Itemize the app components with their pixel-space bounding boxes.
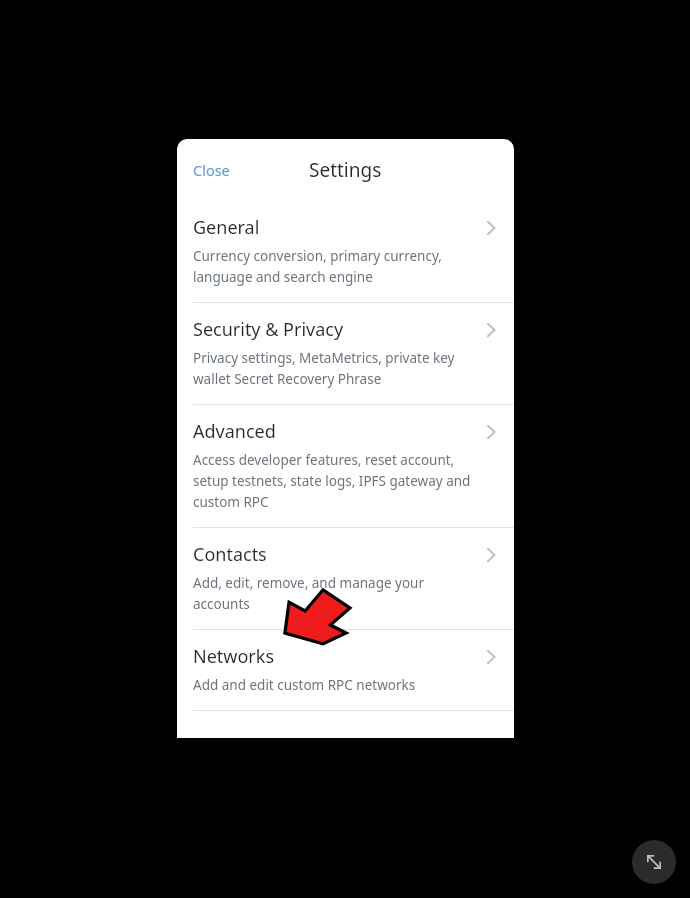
button[interactable]: Expand <box>632 840 676 884</box>
staticText: Add, edit, remove, and manage your <box>193 574 425 592</box>
staticText: Contacts <box>193 542 267 567</box>
staticText: Advanced <box>193 419 276 444</box>
staticText: Access developer features, reset account… <box>193 451 455 469</box>
staticText: Currency conversion, primary currency, <box>193 247 442 265</box>
button[interactable]: General <box>177 201 514 302</box>
staticText: Add and edit custom RPC networks <box>193 676 416 694</box>
staticText: Settings <box>309 157 382 183</box>
staticText: custom RPC <box>193 493 269 511</box>
staticText: language and search engine <box>193 268 373 286</box>
staticText: setup testnets, state logs, IPFS gateway… <box>193 472 471 490</box>
button[interactable]: Advanced <box>177 405 514 527</box>
staticText: accounts <box>193 595 250 613</box>
staticText: General <box>193 215 260 240</box>
button[interactable]: Close <box>185 154 238 186</box>
staticText: wallet Secret Recovery Phrase <box>193 370 382 388</box>
button[interactable]: Networks <box>177 630 514 710</box>
button[interactable]: Security & Privacy <box>177 303 514 404</box>
button[interactable]: Contacts <box>177 528 514 629</box>
staticText: Close <box>193 160 230 180</box>
staticText: Security & Privacy <box>193 317 344 342</box>
staticText: Networks <box>193 644 275 669</box>
staticText: Privacy settings, MetaMetrics, private k… <box>193 349 480 367</box>
